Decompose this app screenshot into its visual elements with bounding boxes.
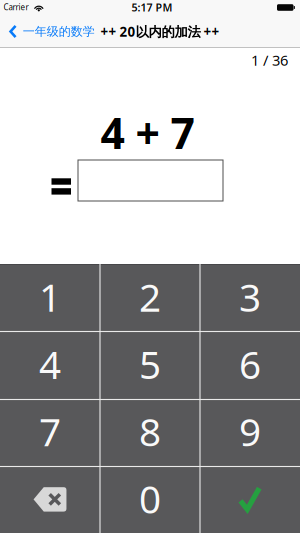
staticText: 一年级的数学 bbox=[23, 24, 95, 39]
button[interactable]: 2 bbox=[101, 264, 199, 329]
staticText: 5 bbox=[139, 338, 161, 389]
staticText: Carrier bbox=[3, 2, 28, 12]
button[interactable]: 一年级的数学 bbox=[9, 24, 95, 39]
button[interactable] bbox=[201, 467, 299, 532]
staticText: 2 bbox=[139, 271, 161, 322]
button[interactable]: 0 bbox=[101, 466, 199, 531]
staticText: 5:17 PM bbox=[131, 0, 172, 14]
button[interactable]: 7 bbox=[1, 399, 99, 464]
staticText: 8 bbox=[139, 405, 161, 457]
staticText: 1 bbox=[39, 271, 61, 322]
staticText: 1 / 36 bbox=[251, 50, 288, 70]
button[interactable] bbox=[1, 467, 99, 532]
button[interactable]: 8 bbox=[101, 399, 199, 464]
staticText: 3 bbox=[239, 271, 261, 322]
staticText: 6 bbox=[239, 338, 261, 389]
staticText: 0 bbox=[139, 473, 161, 524]
button[interactable]: 1 bbox=[1, 264, 99, 329]
button[interactable]: 6 bbox=[201, 331, 299, 396]
staticText: ++ 20以内的加法 ++ bbox=[100, 23, 219, 40]
button[interactable]: 4 bbox=[1, 331, 99, 396]
button[interactable]: 5 bbox=[101, 331, 199, 396]
staticText: 7 bbox=[39, 405, 61, 457]
staticText: 4 bbox=[39, 338, 61, 389]
button[interactable]: 9 bbox=[201, 399, 299, 464]
staticText: 4 + 7 bbox=[100, 104, 194, 161]
staticText: 9 bbox=[239, 405, 261, 457]
button[interactable]: 3 bbox=[201, 264, 299, 329]
